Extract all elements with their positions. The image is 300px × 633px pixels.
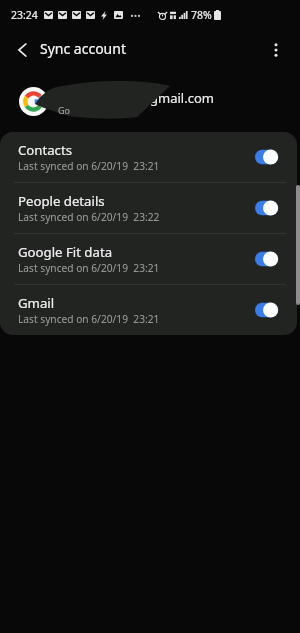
staticText: 23:24 xyxy=(11,8,38,22)
staticText: Last synced on 6/20/19 23:21 xyxy=(18,261,160,275)
button[interactable]: Contacts xyxy=(0,132,297,182)
staticText: Gmail xyxy=(18,294,55,312)
button[interactable]: Sync toggle xyxy=(255,147,278,167)
button[interactable]: Gmail xyxy=(0,285,297,335)
button[interactable]: Sync toggle xyxy=(255,300,278,320)
staticText: Go xyxy=(58,104,70,116)
staticText: Sync account xyxy=(40,39,126,58)
button[interactable]: Sync toggle xyxy=(255,249,278,269)
button[interactable]: gmail.com xyxy=(0,66,300,132)
button[interactable]: People details xyxy=(0,183,297,233)
staticText: Contacts xyxy=(18,141,73,159)
staticText: 78% xyxy=(191,8,212,22)
button[interactable]: Navigate up xyxy=(6,34,38,66)
button[interactable]: Google Fit data xyxy=(0,234,297,284)
staticText: People details xyxy=(18,192,105,210)
staticText: gmail.com xyxy=(150,89,214,107)
staticText: Last synced on 6/20/19 23:21 xyxy=(18,312,160,326)
staticText: Last synced on 6/20/19 23:22 xyxy=(18,210,160,224)
staticText: Google Fit data xyxy=(18,243,113,261)
button[interactable]: More options xyxy=(260,34,292,66)
staticText: Last synced on 6/20/19 23:21 xyxy=(18,159,160,173)
button[interactable]: Sync toggle xyxy=(255,198,278,218)
